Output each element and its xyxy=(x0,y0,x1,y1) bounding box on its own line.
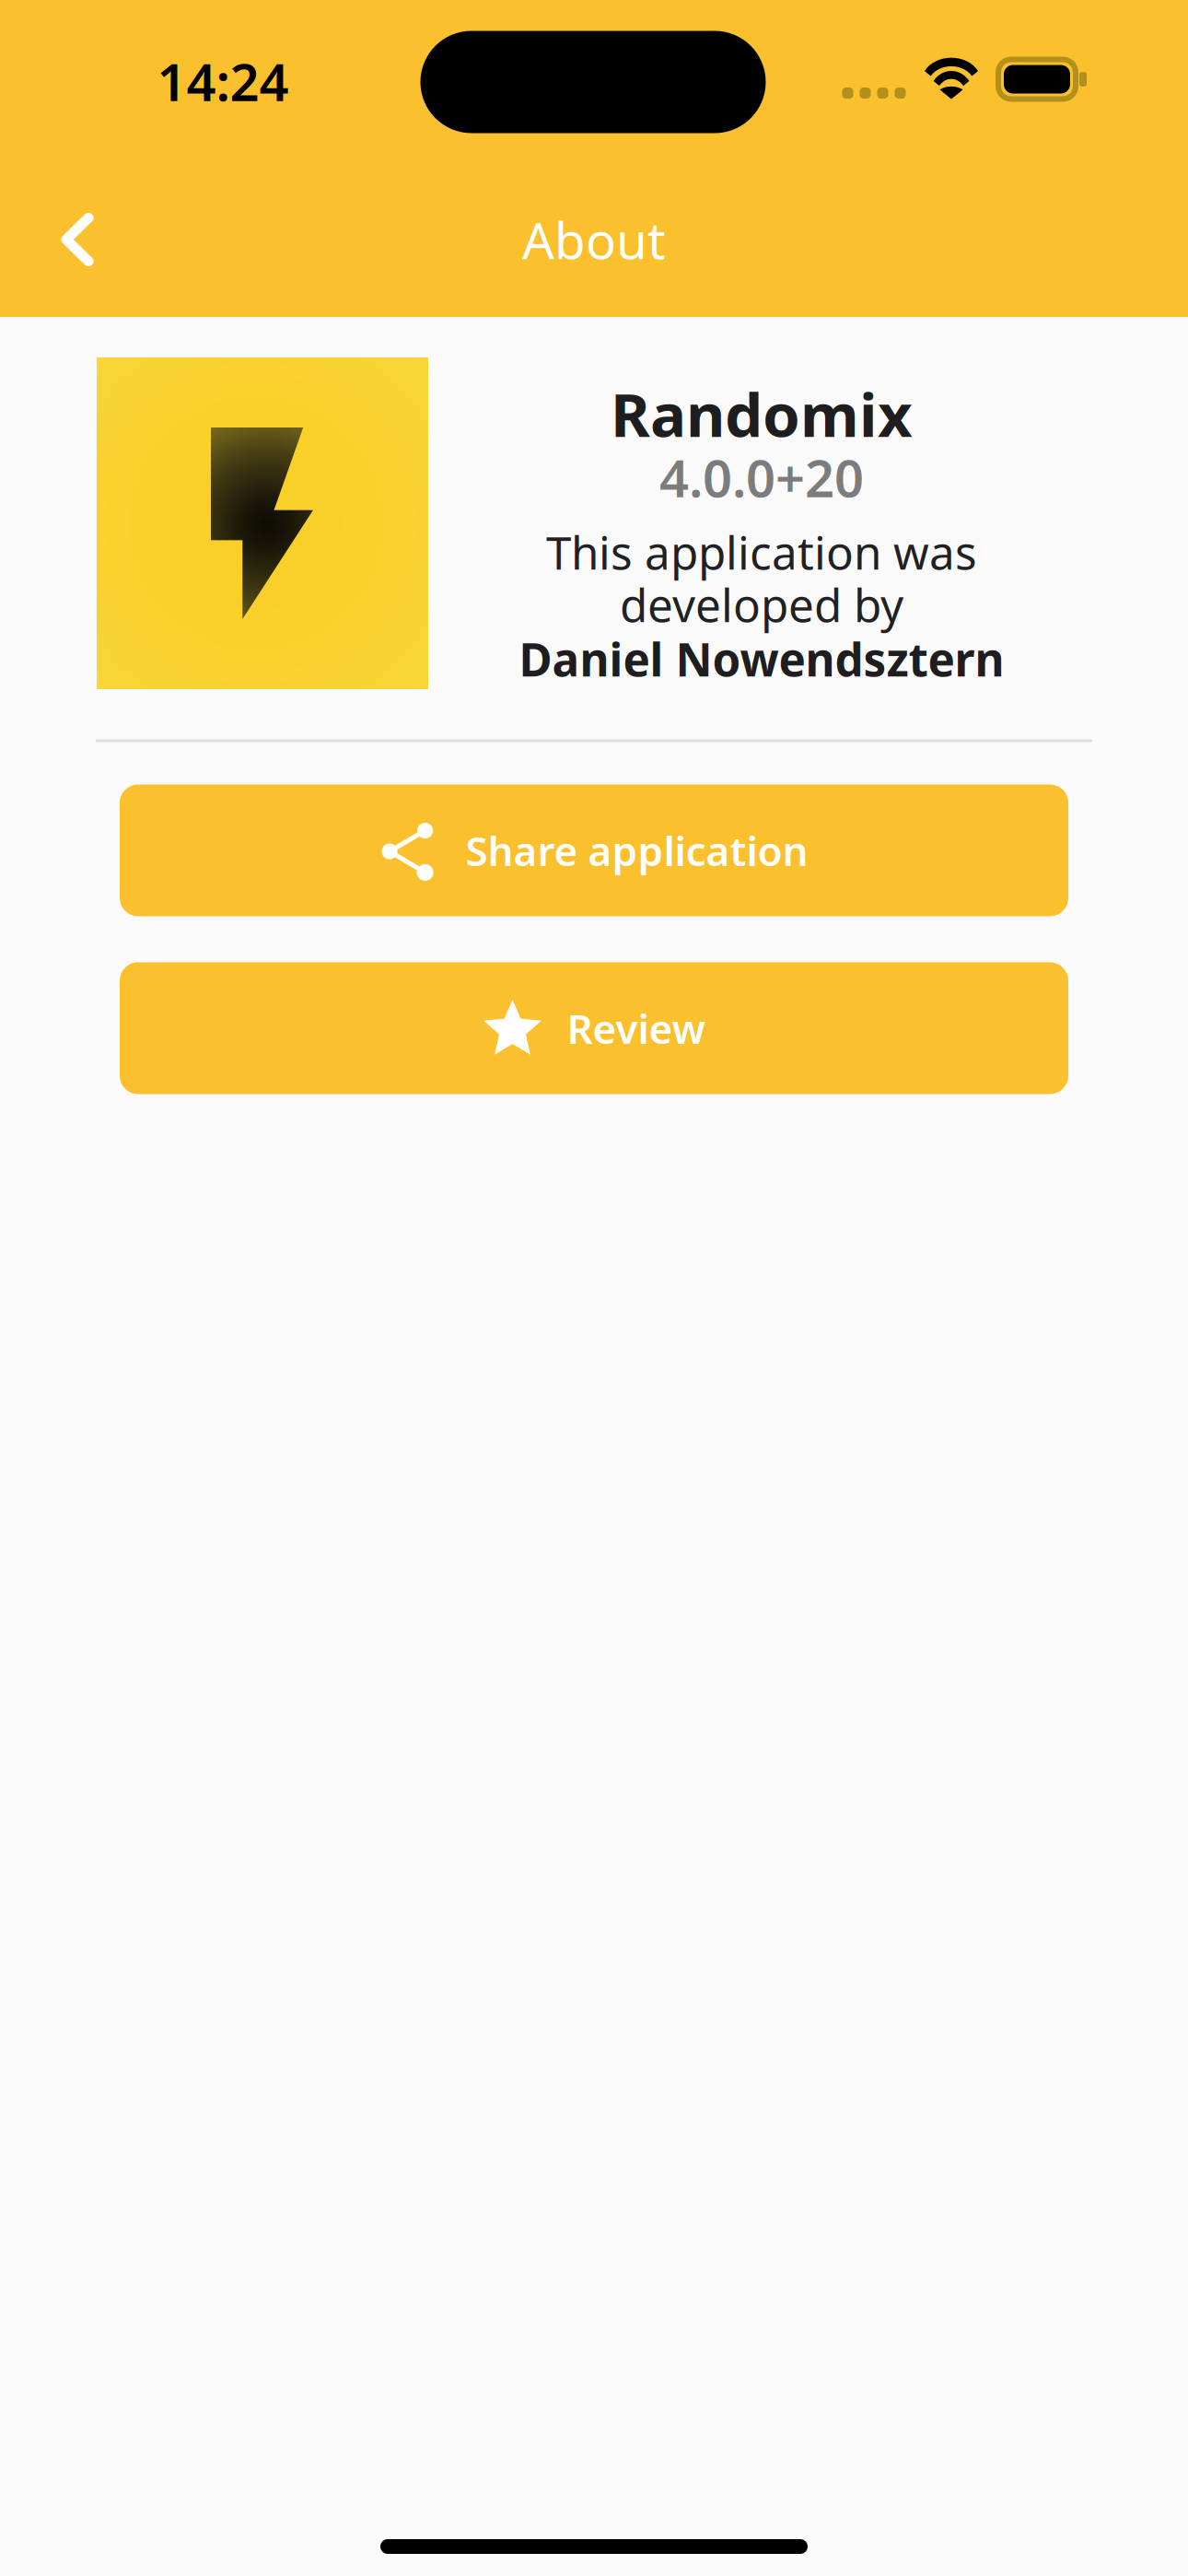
button[interactable]: Share application xyxy=(120,785,1068,916)
staticText: 14:24 xyxy=(157,47,289,115)
staticText: Randomix xyxy=(611,374,913,454)
button[interactable]: Back xyxy=(23,175,132,304)
staticText: Daniel Nowendsztern xyxy=(519,629,1004,689)
staticText: Share application xyxy=(466,823,808,877)
button[interactable]: Review xyxy=(120,962,1068,1094)
staticText: developed by xyxy=(620,574,903,635)
staticText: Review xyxy=(567,1001,706,1055)
staticText: This application was xyxy=(546,522,977,582)
staticText: 4.0.0+20 xyxy=(659,443,864,512)
staticText: About xyxy=(522,206,666,273)
